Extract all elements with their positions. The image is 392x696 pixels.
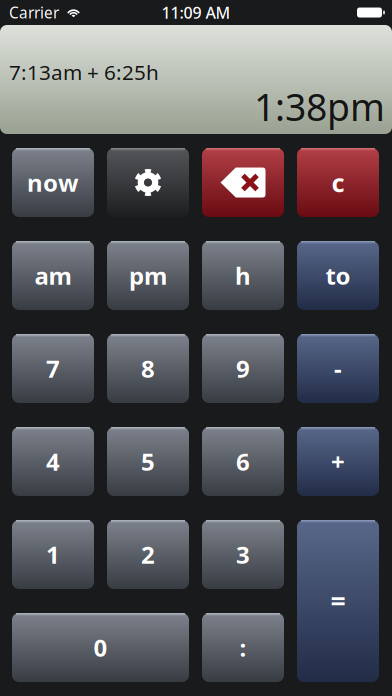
button[interactable]: pm [107, 241, 189, 310]
staticText: to [325, 260, 350, 291]
staticText: 4 [46, 446, 60, 477]
staticText: = [330, 583, 345, 619]
staticText: 2 [141, 539, 155, 570]
staticText: 0 [93, 632, 107, 663]
staticText: 9 [236, 353, 250, 384]
button[interactable]: + [297, 427, 379, 496]
button[interactable]: 2 [107, 520, 189, 589]
button[interactable]: 9 [202, 334, 284, 403]
staticText: 7:13am + 6:25h [9, 58, 159, 86]
staticText: 7 [46, 353, 60, 384]
button[interactable]: 1 [12, 520, 94, 589]
button[interactable]: c [297, 148, 379, 217]
button[interactable]: 3 [202, 520, 284, 589]
button[interactable]: Settings [107, 148, 189, 217]
button[interactable]: h [202, 241, 284, 310]
button[interactable]: 6 [202, 427, 284, 496]
staticText: + [331, 446, 345, 477]
staticText: pm [129, 260, 167, 291]
staticText: h [235, 260, 251, 291]
button[interactable]: 7 [12, 334, 94, 403]
staticText: now [27, 167, 79, 198]
button[interactable]: : [202, 613, 284, 682]
staticText: c [331, 166, 344, 199]
button[interactable]: 5 [107, 427, 189, 496]
button[interactable]: 8 [107, 334, 189, 403]
staticText: 3 [236, 539, 250, 570]
button[interactable]: now [12, 148, 94, 217]
button[interactable]: 4 [12, 427, 94, 496]
staticText: Carrier [9, 2, 59, 23]
button[interactable]: - [297, 334, 379, 403]
staticText: 8 [141, 353, 155, 384]
staticText: 11:09 AM [161, 2, 230, 23]
staticText: 5 [141, 446, 155, 477]
button[interactable]: = [297, 520, 379, 682]
staticText: : [239, 632, 246, 663]
button[interactable]: to [297, 241, 379, 310]
staticText: 6 [236, 446, 250, 477]
staticText: am [34, 260, 71, 291]
staticText: 1 [46, 539, 60, 570]
staticText: - [334, 353, 342, 384]
button[interactable]: 0 [12, 613, 189, 682]
button[interactable]: am [12, 241, 94, 310]
button[interactable]: Delete [202, 148, 284, 217]
staticText: 1:38pm [254, 81, 385, 132]
